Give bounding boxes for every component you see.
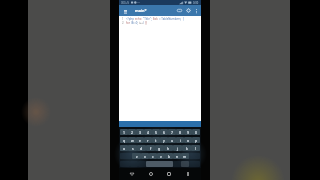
staticText: } (183, 17, 185, 21)
staticText: s (132, 146, 134, 151)
button[interactable]: 2 (128, 129, 136, 135)
staticText: 2 (131, 130, 133, 135)
staticText: a (123, 146, 125, 151)
staticText: w (131, 138, 134, 143)
button[interactable]: m (181, 153, 189, 159)
button[interactable]: y (160, 137, 168, 143)
button[interactable]: Recent apps (163, 168, 175, 180)
staticText: 4 (147, 130, 149, 135)
button[interactable]: j (173, 145, 182, 151)
staticText: f (150, 146, 152, 151)
button[interactable]: w (128, 137, 136, 143)
button[interactable]: Backspace (189, 153, 200, 159)
staticText: d (140, 146, 143, 151)
button[interactable]: 0 (192, 129, 200, 135)
button[interactable]: r (144, 137, 152, 143)
staticText: 0:00 (193, 1, 199, 5)
button[interactable]: k (182, 145, 191, 151)
button[interactable]: x (141, 153, 149, 159)
button[interactable]: Back (126, 168, 138, 180)
button[interactable]: t (152, 137, 160, 143)
staticText: t (155, 138, 157, 143)
button[interactable]: l (191, 145, 200, 151)
staticText: e (139, 138, 141, 143)
button[interactable]: 5 (152, 129, 160, 135)
button[interactable]: c (149, 153, 157, 159)
button[interactable]: i (176, 137, 184, 143)
staticText: v (160, 154, 162, 159)
staticText: 000+% (121, 1, 130, 5)
staticText: g (158, 146, 161, 151)
button[interactable]: Settings (184, 6, 193, 15)
button[interactable]: 9 (184, 129, 192, 135)
staticText: x (144, 154, 146, 159)
staticText: c (152, 154, 154, 159)
staticText: 1 (123, 130, 125, 135)
button[interactable]: Emoji (130, 161, 138, 167)
staticText: z (136, 154, 138, 159)
staticText: 2 (122, 21, 124, 25)
button[interactable]: g (155, 145, 164, 151)
button[interactable]: Navigation menu (121, 7, 129, 15)
button[interactable]: p (192, 137, 200, 143)
staticText: 1 (122, 17, 124, 21)
staticText: 6 (163, 130, 165, 135)
staticText: 3 (139, 130, 141, 135)
staticText: <?php (126, 17, 135, 21)
staticText: 8 (179, 130, 181, 135)
staticText: 9 (187, 130, 189, 135)
button[interactable]: 1 (120, 129, 128, 135)
staticText: 5 (155, 130, 157, 135)
button[interactable]: Symbols (120, 161, 130, 167)
staticText: $ok (153, 17, 159, 21)
button[interactable]: Comma (138, 161, 146, 167)
staticText: k (186, 146, 188, 151)
button[interactable]: f (146, 145, 155, 151)
staticText: = TableNumbers; (159, 17, 182, 21)
staticText: l (195, 146, 196, 151)
button[interactable]: o (184, 137, 192, 143)
button[interactable]: Menu (182, 168, 194, 180)
staticText: n (176, 154, 179, 159)
staticText: m (183, 154, 187, 159)
button[interactable]: 6 (160, 129, 168, 135)
button[interactable]: a (120, 145, 128, 151)
button[interactable]: Enter (189, 161, 200, 167)
button[interactable]: h (164, 145, 173, 151)
button[interactable]: q (120, 137, 128, 143)
button[interactable]: Shift (120, 153, 132, 159)
button[interactable]: e (136, 137, 144, 143)
button[interactable]: s (128, 145, 137, 151)
button[interactable]: n (173, 153, 181, 159)
staticText: ($i=0; (131, 21, 139, 25)
staticText: main* (135, 8, 147, 13)
staticText: q (123, 138, 126, 143)
staticText: 7 (171, 130, 173, 135)
staticText: r (147, 138, 149, 143)
staticText: u (171, 138, 174, 143)
button[interactable]: d (137, 145, 146, 151)
staticText: echo (135, 17, 143, 21)
staticText: p (195, 138, 198, 143)
staticText: o (187, 138, 190, 143)
staticText: h (167, 146, 170, 151)
button[interactable]: Home (145, 168, 157, 180)
staticText: "Title"; (143, 17, 153, 21)
button[interactable]: More options (193, 7, 200, 14)
button[interactable]: 7 (168, 129, 176, 135)
staticText: y (163, 138, 165, 143)
staticText: i++ (139, 21, 143, 25)
button[interactable]: 3 (136, 129, 144, 135)
staticText: b (168, 154, 171, 159)
button[interactable]: 8 (176, 129, 184, 135)
button[interactable]: v (157, 153, 165, 159)
button[interactable]: b (165, 153, 173, 159)
button[interactable]: z (132, 153, 141, 159)
button[interactable]: u (168, 137, 176, 143)
staticText: i (180, 138, 181, 143)
button[interactable]: 4 (144, 129, 152, 135)
button[interactable]: Undo (175, 6, 184, 15)
